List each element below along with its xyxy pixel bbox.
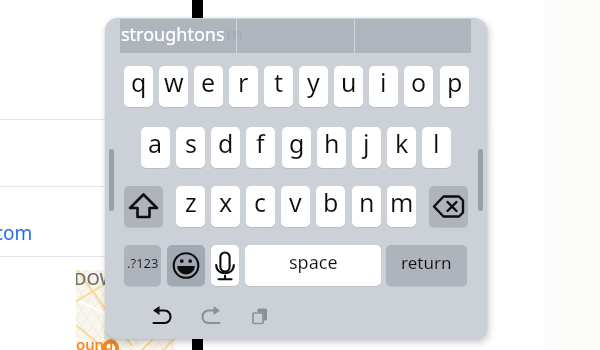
staticText: y bbox=[307, 66, 320, 99]
button[interactable]: h bbox=[317, 127, 346, 168]
button[interactable]: Undo bbox=[145, 300, 179, 331]
button[interactable]: l bbox=[422, 127, 451, 168]
staticText: c bbox=[254, 186, 267, 219]
button[interactable]: z bbox=[176, 186, 205, 227]
button[interactable]: return bbox=[386, 245, 467, 286]
button[interactable]: y bbox=[299, 66, 328, 107]
button[interactable]: v bbox=[281, 186, 310, 227]
button[interactable]: Dictation bbox=[211, 245, 239, 286]
staticText: k bbox=[395, 127, 409, 160]
staticText: .?123 bbox=[127, 254, 159, 272]
button[interactable]: stroughtons bbox=[121, 22, 225, 47]
button[interactable]: d bbox=[211, 127, 240, 168]
staticText: com bbox=[0, 220, 33, 246]
button[interactable]: i bbox=[369, 66, 398, 107]
button[interactable]: DOWN bbox=[76, 270, 175, 350]
button[interactable]: k bbox=[387, 127, 416, 168]
button[interactable]: Redo bbox=[194, 300, 228, 331]
staticText: s bbox=[185, 127, 197, 160]
button[interactable]: f bbox=[246, 127, 275, 168]
button[interactable]: Resize keyboard bbox=[109, 149, 114, 211]
staticText: DOWN bbox=[76, 270, 129, 290]
button[interactable]: e bbox=[194, 66, 223, 107]
staticText: b bbox=[323, 186, 339, 219]
button[interactable]: r bbox=[229, 66, 258, 107]
staticText: h bbox=[324, 127, 340, 160]
staticText: l bbox=[433, 127, 440, 160]
staticText: z bbox=[185, 186, 197, 219]
staticText: i bbox=[380, 66, 387, 99]
staticText: q bbox=[131, 66, 147, 99]
button[interactable]: x bbox=[211, 186, 240, 227]
staticText: u bbox=[341, 66, 357, 99]
button[interactable]: b bbox=[316, 186, 345, 227]
button[interactable]: space bbox=[245, 245, 381, 286]
staticText: n bbox=[359, 186, 375, 219]
staticText: stroughtons bbox=[121, 22, 225, 47]
button[interactable]: q bbox=[124, 66, 153, 107]
button[interactable]: o bbox=[404, 66, 433, 107]
button[interactable]: Paste bbox=[243, 300, 277, 331]
staticText: r bbox=[238, 66, 249, 99]
staticText: o bbox=[411, 66, 427, 99]
button[interactable]: c bbox=[246, 186, 275, 227]
button[interactable]: Shift bbox=[124, 186, 163, 227]
staticText: m bbox=[390, 186, 414, 219]
button[interactable]: com bbox=[0, 220, 33, 246]
button[interactable]: g bbox=[282, 127, 311, 168]
button[interactable]: p bbox=[440, 66, 469, 107]
button[interactable]: a bbox=[141, 127, 170, 168]
staticText: t bbox=[274, 66, 284, 99]
staticText: ound bbox=[76, 334, 114, 350]
staticText: space bbox=[289, 250, 338, 275]
button[interactable]: t bbox=[264, 66, 293, 107]
button[interactable]: w bbox=[159, 66, 188, 107]
button[interactable]: Resize keyboard bbox=[478, 149, 483, 211]
button[interactable]: m bbox=[387, 186, 416, 227]
staticText: g bbox=[289, 127, 305, 160]
staticText: m bbox=[226, 22, 243, 47]
button[interactable]: j bbox=[352, 127, 381, 168]
staticText: j bbox=[363, 127, 370, 160]
staticText: x bbox=[219, 186, 233, 219]
staticText: d bbox=[218, 127, 234, 160]
staticText: f bbox=[256, 127, 265, 160]
staticText: return bbox=[401, 251, 452, 274]
staticText: w bbox=[164, 66, 184, 99]
staticText: p bbox=[447, 66, 463, 99]
button[interactable]: Emoji bbox=[167, 245, 205, 286]
staticText: a bbox=[148, 127, 163, 160]
button[interactable]: Delete bbox=[429, 186, 468, 227]
button[interactable]: n bbox=[352, 186, 381, 227]
button[interactable]: .?123 bbox=[124, 245, 161, 286]
staticText: v bbox=[289, 186, 302, 219]
staticText: e bbox=[201, 66, 216, 99]
button[interactable]: u bbox=[334, 66, 363, 107]
button[interactable]: s bbox=[176, 127, 205, 168]
